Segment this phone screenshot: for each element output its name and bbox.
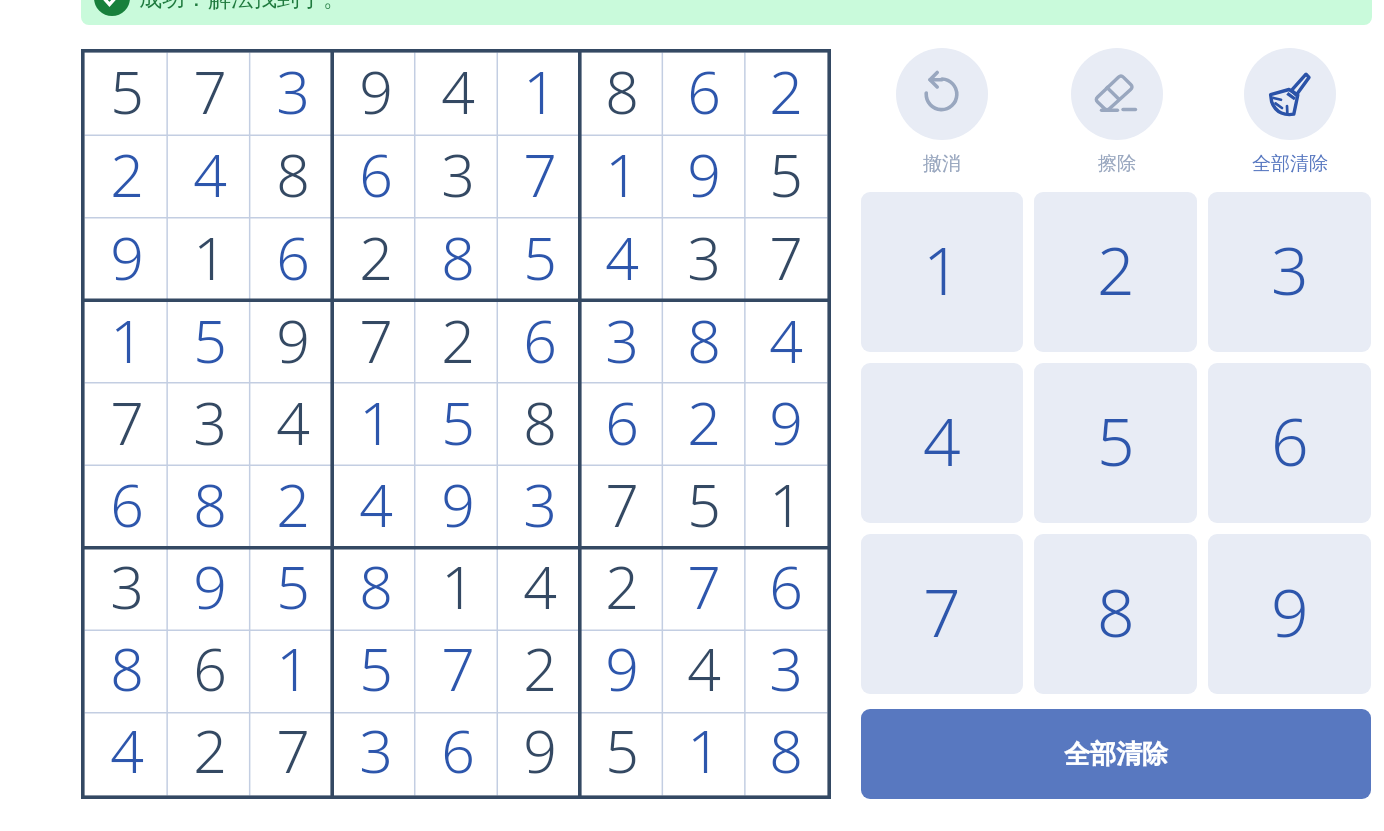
button[interactable]: 3: [745, 631, 827, 713]
button[interactable]: 8: [499, 385, 581, 467]
button[interactable]: 2: [663, 385, 745, 467]
button[interactable]: 5: [334, 631, 417, 713]
button[interactable]: 1: [251, 631, 334, 713]
button[interactable]: 3: [334, 713, 417, 795]
staticText: 8: [276, 134, 310, 214]
button[interactable]: 4: [581, 219, 663, 302]
button[interactable]: Undo: [896, 48, 988, 176]
button[interactable]: 2: [334, 219, 417, 302]
staticText: 4: [769, 300, 803, 380]
button[interactable]: 3: [581, 302, 663, 385]
button[interactable]: 8: [745, 713, 827, 795]
button[interactable]: 9: [499, 713, 581, 795]
button[interactable]: 6: [251, 219, 334, 302]
button[interactable]: 9: [334, 53, 417, 136]
staticText: 1: [923, 224, 961, 314]
button[interactable]: 3: [663, 219, 745, 302]
button[interactable]: 5: [663, 467, 745, 549]
button[interactable]: 7: [663, 549, 745, 631]
button[interactable]: 7: [745, 219, 827, 302]
button[interactable]: 1: [499, 53, 581, 136]
button[interactable]: 8: [251, 136, 334, 219]
button[interactable]: 9: [745, 385, 827, 467]
button[interactable]: 3: [168, 385, 251, 467]
button[interactable]: 8: [581, 53, 663, 136]
button[interactable]: 5: [417, 385, 499, 467]
button[interactable]: 8: [663, 302, 745, 385]
button[interactable]: 2: [1034, 192, 1197, 352]
button[interactable]: 7: [861, 534, 1023, 694]
button[interactable]: 2: [745, 53, 827, 136]
button[interactable]: 6: [168, 631, 251, 713]
button[interactable]: 7: [251, 713, 334, 795]
button[interactable]: 5: [499, 219, 581, 302]
button[interactable]: 3: [417, 136, 499, 219]
button[interactable]: 8: [85, 631, 168, 713]
button[interactable]: 6: [334, 136, 417, 219]
button[interactable]: 4: [745, 302, 827, 385]
button[interactable]: 4: [861, 363, 1023, 523]
button[interactable]: 5: [251, 549, 334, 631]
button[interactable]: 2: [499, 631, 581, 713]
button[interactable]: 7: [168, 53, 251, 136]
button[interactable]: 6: [1208, 363, 1371, 523]
button[interactable]: 4: [499, 549, 581, 631]
button[interactable]: 5: [745, 136, 827, 219]
button[interactable]: 6: [499, 302, 581, 385]
button[interactable]: 1: [417, 549, 499, 631]
button[interactable]: 2: [85, 136, 168, 219]
button[interactable]: 1: [334, 385, 417, 467]
button[interactable]: 9: [251, 302, 334, 385]
button[interactable]: 6: [85, 467, 168, 549]
button[interactable]: 8: [417, 219, 499, 302]
button[interactable]: 4: [663, 631, 745, 713]
button[interactable]: 4: [85, 713, 168, 795]
button[interactable]: 5: [85, 53, 168, 136]
button[interactable]: Erase: [1071, 48, 1163, 176]
staticText: 2: [276, 464, 310, 544]
button[interactable]: 4: [417, 53, 499, 136]
button[interactable]: 3: [1208, 192, 1371, 352]
button[interactable]: 3: [251, 53, 334, 136]
button[interactable]: 4: [334, 467, 417, 549]
button[interactable]: 5: [1034, 363, 1197, 523]
button[interactable]: 5: [168, 302, 251, 385]
button[interactable]: 7: [499, 136, 581, 219]
button[interactable]: 全部清除: [861, 709, 1371, 799]
button[interactable]: 9: [1208, 534, 1371, 694]
staticText: 6: [359, 134, 393, 214]
button[interactable]: 3: [499, 467, 581, 549]
button[interactable]: 9: [417, 467, 499, 549]
button[interactable]: 7: [85, 385, 168, 467]
button[interactable]: 2: [417, 302, 499, 385]
button[interactable]: 1: [663, 713, 745, 795]
button[interactable]: 8: [1034, 534, 1197, 694]
button[interactable]: 1: [168, 219, 251, 302]
button[interactable]: 2: [168, 713, 251, 795]
button[interactable]: 6: [581, 385, 663, 467]
button[interactable]: 9: [85, 219, 168, 302]
button[interactable]: 7: [417, 631, 499, 713]
button[interactable]: 5: [581, 713, 663, 795]
button[interactable]: 8: [168, 467, 251, 549]
button[interactable]: 9: [581, 631, 663, 713]
button[interactable]: 7: [581, 467, 663, 549]
button[interactable]: 6: [745, 549, 827, 631]
button[interactable]: 4: [251, 385, 334, 467]
button[interactable]: 6: [663, 53, 745, 136]
button[interactable]: 1: [861, 192, 1023, 352]
button[interactable]: 7: [334, 302, 417, 385]
button[interactable]: 3: [85, 549, 168, 631]
button[interactable]: 4: [168, 136, 251, 219]
button[interactable]: 6: [417, 713, 499, 795]
button[interactable]: 9: [663, 136, 745, 219]
button[interactable]: 1: [745, 467, 827, 549]
button[interactable]: 2: [581, 549, 663, 631]
button[interactable]: 2: [251, 467, 334, 549]
button[interactable]: 9: [168, 549, 251, 631]
button[interactable]: 1: [85, 302, 168, 385]
button[interactable]: 1: [581, 136, 663, 219]
staticText: 6: [276, 217, 310, 297]
button[interactable]: 8: [334, 549, 417, 631]
button[interactable]: Clear all: [1244, 48, 1336, 176]
